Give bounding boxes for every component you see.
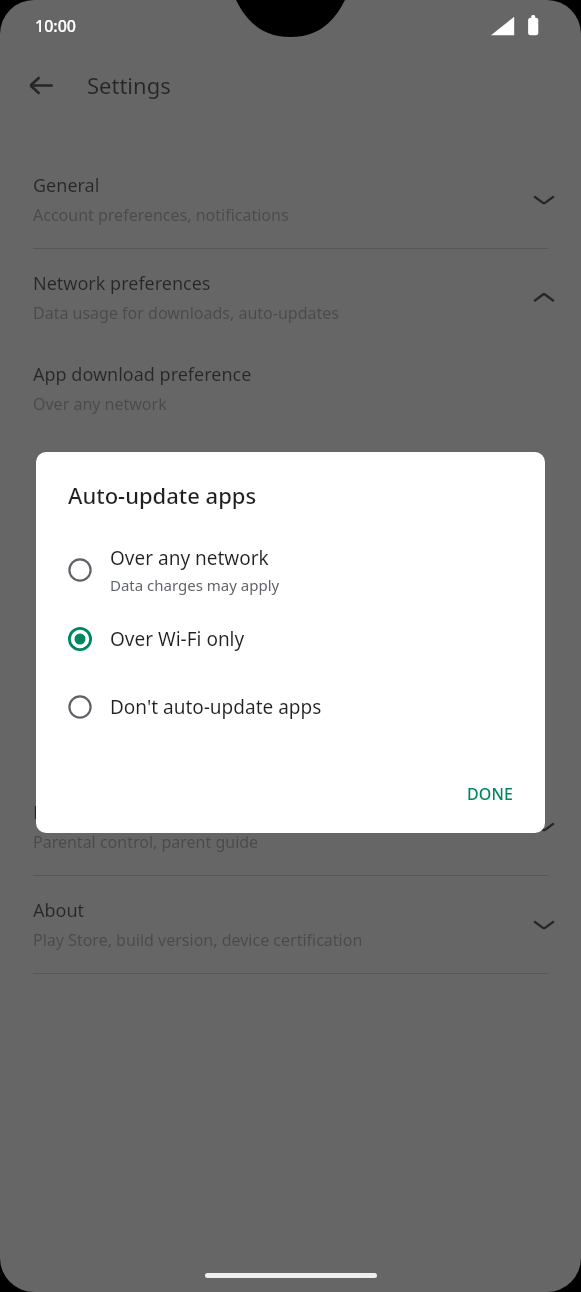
staticText: App download preference (33, 362, 252, 387)
staticText: Family (33, 800, 88, 825)
staticText: Don't auto-update apps (110, 694, 322, 720)
button[interactable]: About (0, 876, 581, 973)
staticText: Account preferences, notifications (33, 204, 289, 226)
button[interactable]: Over any network (36, 535, 545, 605)
button[interactable]: Don't auto-update apps (36, 673, 545, 741)
staticText: Network preferences (33, 271, 211, 296)
staticText: Data usage for downloads, auto-updates (33, 302, 339, 324)
button[interactable]: DONE (453, 771, 527, 817)
staticText: Over any network (33, 393, 167, 415)
staticText: Parental control, parent guide (33, 831, 259, 853)
staticText: Play Store, build version, device certif… (33, 929, 363, 951)
staticText: 10:00 (35, 15, 76, 37)
staticText: DONE (467, 783, 513, 805)
staticText: Over Wi-Fi only (110, 626, 245, 652)
staticText: General (33, 173, 100, 198)
staticText: About (33, 898, 85, 923)
button[interactable]: General (0, 151, 581, 248)
button[interactable]: Over Wi-Fi only (36, 605, 545, 673)
staticText: Auto-update apps (68, 480, 257, 510)
staticText: Settings (87, 70, 171, 100)
button[interactable]: Back (17, 61, 65, 109)
staticText: Data charges may apply (110, 575, 280, 595)
button[interactable]: Family (0, 778, 581, 875)
staticText: Over any network (110, 545, 269, 571)
button[interactable]: Network preferences (0, 249, 581, 346)
button[interactable]: App download preference (0, 346, 581, 430)
